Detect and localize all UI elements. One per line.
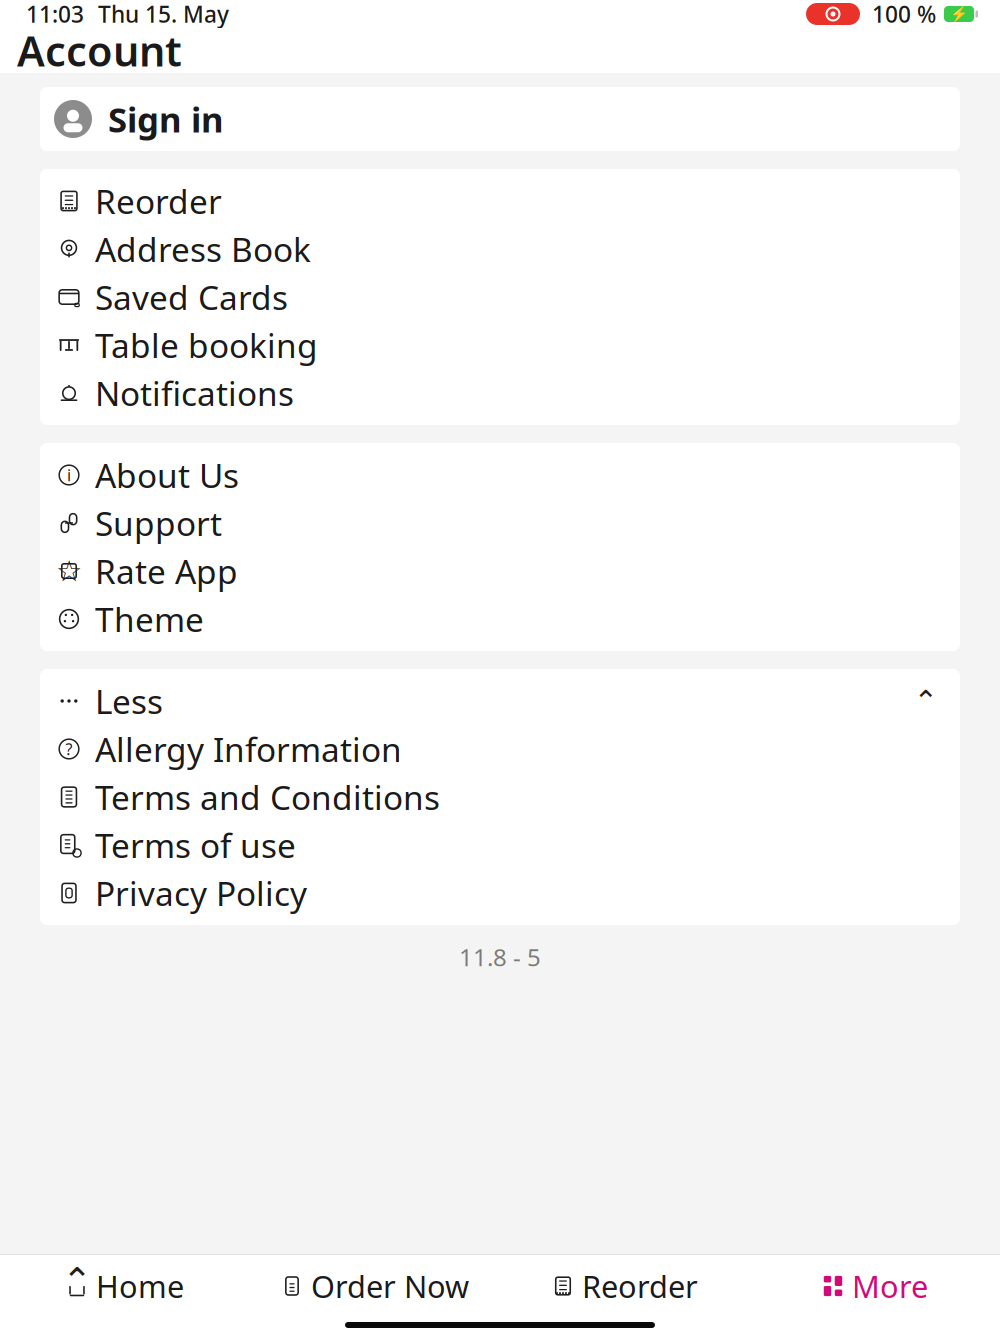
staticText: Notifications xyxy=(95,371,294,415)
staticText: Privacy Policy xyxy=(95,871,307,915)
staticText: Support xyxy=(95,501,222,545)
button[interactable]: Table booking xyxy=(40,321,960,369)
staticText: ⚡ xyxy=(950,6,968,22)
staticText: Reorder xyxy=(582,1266,698,1306)
staticText: Rate App xyxy=(95,549,238,593)
staticText: 11.8 - 5 xyxy=(459,941,541,973)
staticText: Allergy Information xyxy=(95,727,402,771)
staticText: Home xyxy=(96,1266,184,1306)
button[interactable]: Terms and Conditions xyxy=(40,773,960,821)
staticText: Terms of use xyxy=(95,823,296,867)
button[interactable]: Less xyxy=(40,677,960,725)
button[interactable]: ☆ xyxy=(40,547,960,595)
staticText: i xyxy=(67,464,71,486)
staticText: ? xyxy=(65,738,72,760)
staticText: Order Now xyxy=(311,1266,469,1306)
button[interactable]: Privacy Policy xyxy=(40,869,960,917)
button[interactable]: ⌃ xyxy=(0,1256,250,1316)
staticText: ⌃ xyxy=(913,684,938,718)
staticText: ⌃ xyxy=(62,1260,92,1301)
staticText: More xyxy=(852,1266,928,1306)
staticText: Saved Cards xyxy=(95,275,288,319)
staticText: 11:03 xyxy=(26,0,84,29)
button[interactable]: Reorder xyxy=(40,177,960,225)
button[interactable]: More xyxy=(750,1256,1000,1316)
button[interactable]: Order Now xyxy=(250,1256,500,1316)
button[interactable]: Address Book xyxy=(40,225,960,273)
button[interactable]: ? xyxy=(40,725,960,773)
button[interactable]: Support xyxy=(40,499,960,547)
staticText: Terms and Conditions xyxy=(95,775,440,819)
button[interactable]: Sign in xyxy=(40,87,960,151)
staticText: ☆ xyxy=(56,554,82,588)
staticText: Theme xyxy=(95,597,204,641)
button[interactable]: Saved Cards xyxy=(40,273,960,321)
button[interactable]: Reorder xyxy=(500,1256,750,1316)
staticText: Account xyxy=(17,23,182,78)
staticText: About Us xyxy=(95,453,239,497)
staticText: Address Book xyxy=(95,227,311,271)
button[interactable]: Theme xyxy=(40,595,960,643)
staticText: Reorder xyxy=(95,179,222,223)
staticText: Less xyxy=(95,679,163,723)
button[interactable]: Terms of use xyxy=(40,821,960,869)
staticText: 100 % xyxy=(872,0,936,29)
staticText: Thu 15. May xyxy=(98,0,229,29)
staticText: Sign in xyxy=(108,96,224,142)
staticText: Table booking xyxy=(95,323,318,367)
button[interactable]: i xyxy=(40,451,960,499)
button[interactable]: Notifications xyxy=(40,369,960,417)
